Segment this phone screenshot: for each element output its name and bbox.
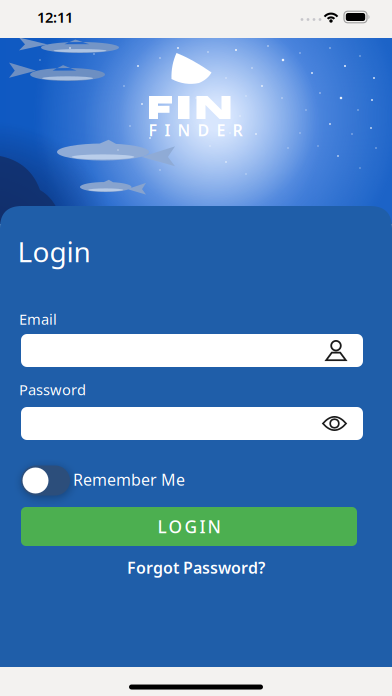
button[interactable]: Forgot Password?: [127, 557, 265, 578]
button[interactable]: Email: [21, 334, 363, 367]
staticText: Login: [17, 233, 90, 270]
staticText: FINDER: [148, 119, 242, 141]
staticText: Email: [19, 309, 57, 329]
button[interactable]: Password: [21, 407, 363, 440]
staticText: 12:11: [37, 7, 73, 27]
button[interactable]: LOGIN: [21, 507, 357, 546]
staticText: Remember Me: [73, 469, 185, 490]
button[interactable]: Remember Me: [21, 465, 70, 495]
staticText: Password: [19, 380, 86, 399]
staticText: LOGIN: [157, 515, 220, 538]
staticText: Forgot Password?: [127, 557, 265, 578]
